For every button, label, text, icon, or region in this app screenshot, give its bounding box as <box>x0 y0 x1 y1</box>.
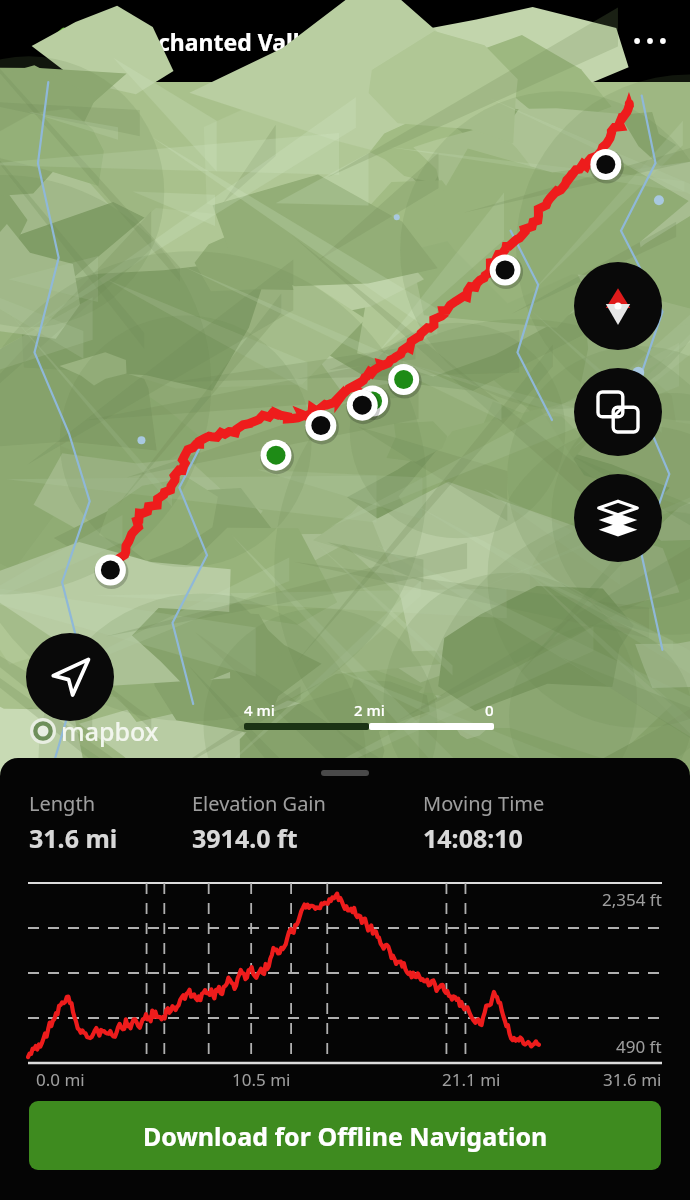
button[interactable]: My location <box>26 633 114 721</box>
staticText: 31.6 mi <box>603 1068 662 1091</box>
staticText: 21.1 mi <box>442 1068 501 1091</box>
staticText: 0 <box>485 700 494 720</box>
button[interactable]: Map layers <box>574 474 662 562</box>
button[interactable]: Back <box>34 17 82 65</box>
button[interactable]: More options <box>624 15 676 67</box>
button[interactable]: Compass <box>574 262 662 350</box>
button[interactable]: Download for Offline Navigation <box>29 1101 661 1170</box>
staticText: Length <box>29 790 95 817</box>
staticText: 3914.0 ft <box>192 821 298 855</box>
staticText: 31.6 mi <box>29 821 118 855</box>
staticText: 0.0 mi <box>36 1068 85 1091</box>
staticText: Download for Offline Navigation <box>143 1119 548 1153</box>
staticText: 490 ft <box>616 1035 662 1058</box>
staticText: Moving Time <box>423 790 545 817</box>
staticText: mapbox <box>61 714 159 748</box>
staticText: Elevation Gain <box>192 790 326 817</box>
button[interactable]: Map overlays <box>574 368 662 456</box>
staticText: 14:08:10 <box>423 821 523 855</box>
staticText: 2 mi <box>354 700 385 720</box>
staticText: 4 mi <box>244 700 275 720</box>
staticText: 10.5 mi <box>232 1068 291 1091</box>
staticText: Enchanted Valley Chalet via East Fork... <box>130 26 577 57</box>
staticText: 2,354 ft <box>602 888 662 911</box>
